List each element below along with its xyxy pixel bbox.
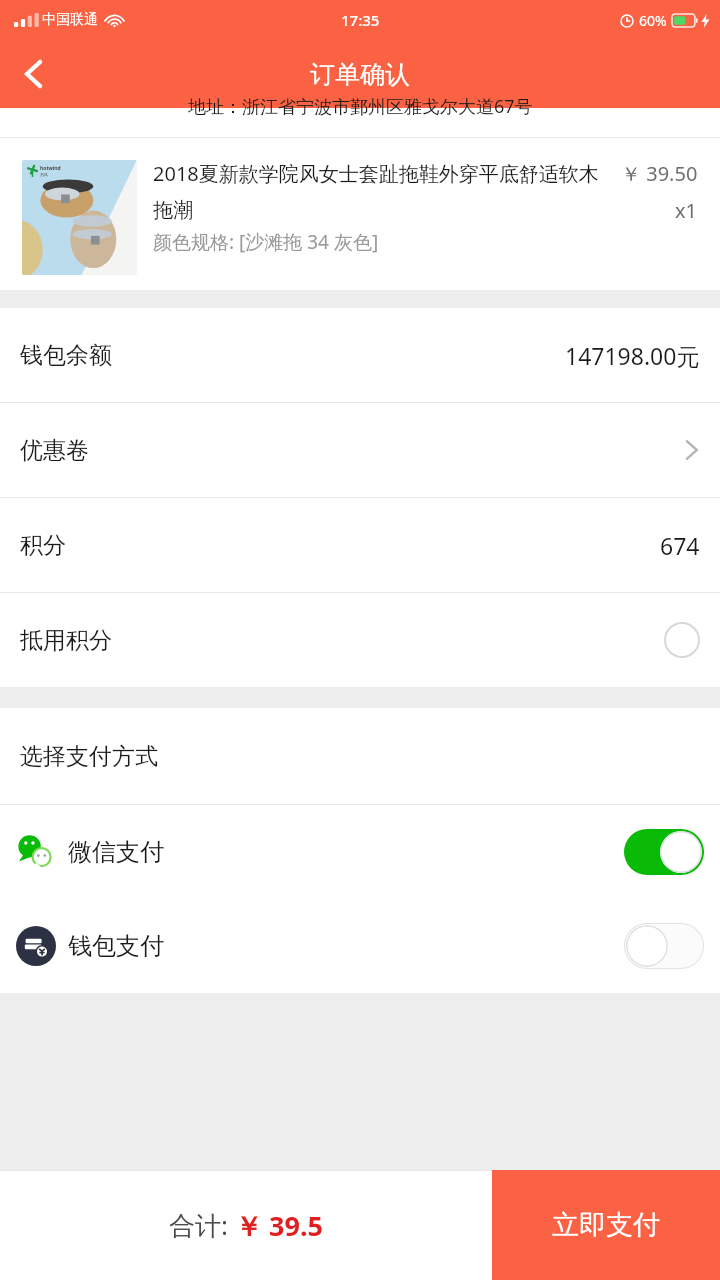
staticText: 钱包支付 bbox=[68, 931, 164, 961]
staticText: hotwind bbox=[40, 165, 61, 172]
staticText: 选择支付方式 bbox=[20, 742, 158, 771]
staticText: 地址：浙江省宁波市鄞州区雅戈尔大道67号 bbox=[188, 94, 533, 119]
staticText: 抵用积分 bbox=[20, 626, 112, 655]
staticText: 微信支付 bbox=[68, 837, 164, 867]
staticText: 积分 bbox=[20, 531, 66, 560]
staticText: 17:35 bbox=[341, 10, 380, 30]
staticText: 颜色规格: [沙滩拖 34 灰色] bbox=[153, 229, 379, 255]
button[interactable]: 钱包支付 bbox=[0, 899, 720, 993]
button[interactable]: Switch on bbox=[624, 829, 704, 875]
staticText: 订单确认 bbox=[310, 59, 410, 90]
staticText: x1 bbox=[675, 197, 698, 224]
staticText: 60% bbox=[639, 11, 667, 30]
button[interactable]: 钱包余额 bbox=[0, 308, 720, 402]
button[interactable]: 积分 bbox=[0, 498, 720, 592]
button[interactable]: 微信支付 bbox=[0, 805, 720, 899]
staticText: ￥ 39.5 bbox=[235, 1207, 323, 1244]
button[interactable]: 立即支付 bbox=[492, 1170, 720, 1280]
staticText: ￥ 39.50 bbox=[621, 160, 698, 187]
staticText: 中国联通 bbox=[42, 11, 98, 29]
button[interactable]: Switch off bbox=[624, 923, 704, 969]
staticText: 钱包余额 bbox=[20, 341, 112, 370]
staticText: 热风 bbox=[40, 172, 48, 177]
button[interactable]: 抵用积分 bbox=[0, 593, 720, 687]
staticText: 147198.00元 bbox=[565, 340, 700, 371]
staticText: 合计: bbox=[169, 1207, 235, 1243]
staticText: 立即支付 bbox=[552, 1208, 660, 1242]
button[interactable]: 优惠卷 bbox=[0, 403, 720, 497]
staticText: 优惠卷 bbox=[20, 436, 89, 465]
button[interactable]: hotwind bbox=[22, 160, 698, 290]
button[interactable]: Back bbox=[6, 46, 62, 102]
staticText: 2018夏新款学院风女士套趾拖鞋外穿平底舒适软木拖潮 bbox=[153, 160, 611, 223]
staticText: 674 bbox=[660, 530, 700, 561]
